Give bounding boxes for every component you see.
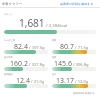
staticText: 13.17 — [56, 76, 74, 86]
staticText: 12.4 — [16, 76, 30, 86]
button[interactable]: 糖質 — [52, 53, 96, 70]
staticText: / 107.5g — [28, 45, 45, 51]
button[interactable]: 摂取目標を変更する — [73, 92, 95, 95]
staticText: 160.2 — [10, 59, 28, 69]
staticText: 1,681 — [19, 16, 45, 30]
button[interactable]: 食物繊維 — [4, 70, 48, 87]
staticText: カロリー — [4, 13, 13, 16]
staticText: / 306.8g — [72, 62, 89, 68]
button[interactable]: たんぱく質 — [4, 36, 48, 53]
staticText: / 327.8g — [28, 62, 45, 68]
button[interactable]: 脂質 — [52, 36, 96, 53]
staticText: たんぱく質 — [4, 39, 15, 42]
staticText: 糖質 — [52, 56, 57, 59]
staticText: 塩分 — [52, 73, 57, 76]
staticText: / 21.0g — [30, 79, 45, 85]
staticText: 食物繊維 — [4, 73, 13, 76]
staticText: / 13.0g — [74, 79, 89, 85]
button[interactable]: 栄養サマリー — [2, 2, 23, 6]
button[interactable]: 炭水化物 — [4, 53, 48, 70]
button[interactable]: 栄養素の詳細を確認する — [60, 2, 94, 6]
button[interactable]: 塩分 — [52, 70, 96, 87]
staticText: 82.4 — [14, 42, 28, 52]
staticText: 80.7 — [60, 42, 74, 52]
staticText: 炭水化物 — [4, 56, 13, 59]
staticText: / 2,384kcal — [45, 23, 68, 29]
staticText: 脂質 — [52, 39, 57, 42]
staticText: / 71.5g — [74, 45, 89, 51]
staticText: 145.6 — [54, 59, 72, 69]
